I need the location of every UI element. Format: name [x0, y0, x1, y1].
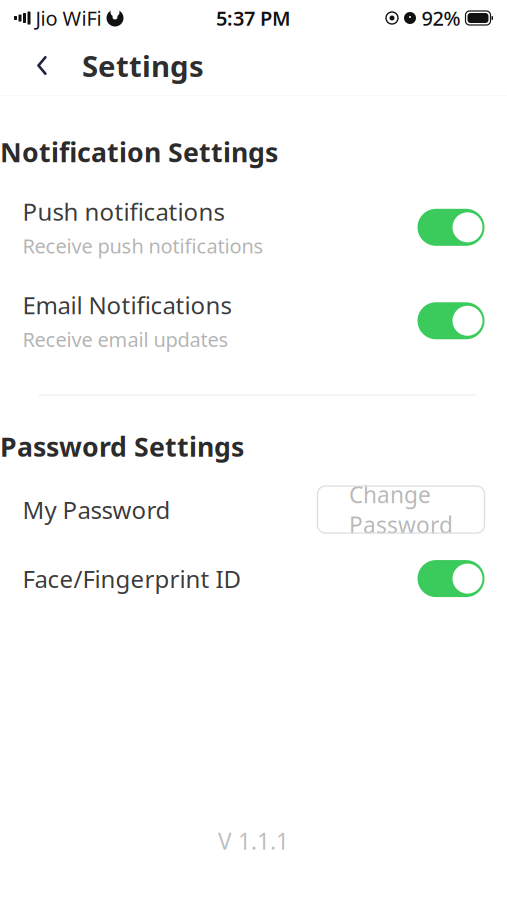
button[interactable]: Push notifications [22, 196, 484, 259]
staticText: Jio WiFi [35, 5, 101, 31]
staticText: Email Notifications [22, 289, 231, 321]
button[interactable]: Back [20, 40, 64, 90]
staticText: Notification Settings [0, 134, 278, 170]
staticText: Password Settings [0, 429, 244, 464]
staticText: 5:37 PM [216, 5, 291, 31]
button[interactable]: Face/Fingerprint ID [417, 560, 484, 597]
staticText: Change Password [349, 479, 453, 540]
staticText: Settings [82, 46, 204, 85]
staticText: 92% [421, 5, 460, 31]
staticText: Push notifications [22, 196, 224, 227]
staticText: V 1.1.1 [218, 826, 289, 856]
staticText: Face/Fingerprint ID [22, 563, 241, 595]
button[interactable]: Email Notifications [22, 289, 484, 352]
button[interactable]: Change Password [317, 486, 484, 533]
staticText: My Password [22, 494, 170, 526]
staticText: Receive email updates [22, 326, 228, 352]
staticText: Receive push notifications [22, 232, 263, 259]
